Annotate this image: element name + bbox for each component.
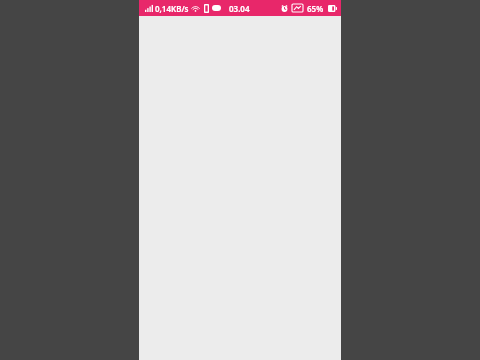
button[interactable]: SIM card	[204, 4, 209, 13]
button[interactable]: Mobile signal strength	[145, 5, 153, 12]
button[interactable]: Data usage	[292, 4, 303, 12]
staticText: 0,14KB/s	[155, 3, 189, 14]
button[interactable]: Battery 65 percent	[328, 5, 337, 12]
staticText: 65%	[307, 3, 324, 14]
staticText: 03.04	[229, 3, 250, 14]
button[interactable]: Alarm set	[281, 5, 288, 12]
button[interactable]: Media playing	[212, 5, 221, 11]
button[interactable]: Wi-Fi connected	[191, 5, 200, 12]
